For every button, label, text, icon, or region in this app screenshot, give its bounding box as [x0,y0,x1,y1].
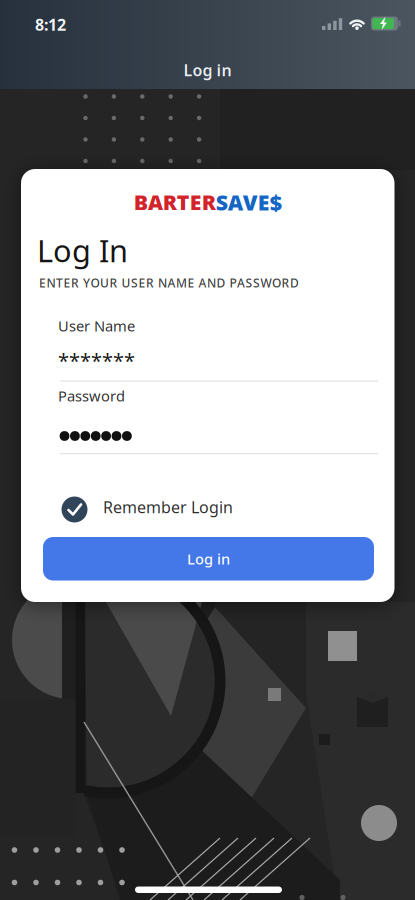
staticText: Password [58,386,125,405]
staticText: User Name [58,316,135,335]
staticText: SAVE$ [216,188,282,216]
staticText: ******* [58,347,135,374]
staticText: Log in [187,549,230,568]
button[interactable]: Log in [43,537,374,580]
button[interactable]: Remember Login [61,496,233,522]
staticText: Log in [183,59,231,81]
staticText: ENTER YOUR USER NAME AND PASSWORD [39,275,299,291]
staticText: Log In [37,230,128,271]
staticText: 8:12 [35,14,66,35]
button[interactable]: Home [135,886,282,893]
staticText: Remember Login [103,496,233,518]
staticText: BARTER [134,188,216,216]
